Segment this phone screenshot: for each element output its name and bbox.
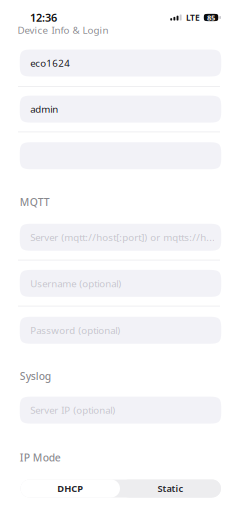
staticText: Server IP (optional): [30, 403, 115, 417]
button[interactable]: Username (optional): [20, 270, 221, 297]
staticText: Password (optional): [30, 324, 120, 337]
button[interactable]: Server IP (optional): [20, 397, 221, 424]
button[interactable]: eco1624: [20, 49, 221, 76]
staticText: Syslog: [20, 369, 51, 383]
button[interactable]: Password (optional): [20, 317, 221, 344]
staticText: DHCP: [57, 482, 83, 495]
staticText: LTE: [186, 12, 200, 23]
staticText: Server (mqtt://host[:port]) or mqtts://h…: [30, 231, 215, 244]
button[interactable]: Server (mqtt://host[:port]) or mqtts://h…: [20, 224, 221, 251]
staticText: 85: [207, 12, 215, 23]
staticText: MQTT: [20, 195, 50, 209]
staticText: Static: [157, 482, 183, 495]
staticText: 12:36: [30, 10, 57, 25]
staticText: eco1624: [30, 56, 70, 70]
staticText: IP Mode: [20, 450, 61, 465]
button[interactable]: DHCP: [20, 479, 120, 497]
staticText: Username (optional): [30, 277, 121, 290]
staticText: admin: [30, 102, 58, 116]
button[interactable]: Static: [120, 479, 221, 497]
staticText: Device Info & Login: [17, 23, 108, 36]
button[interactable]: admin: [20, 96, 221, 123]
